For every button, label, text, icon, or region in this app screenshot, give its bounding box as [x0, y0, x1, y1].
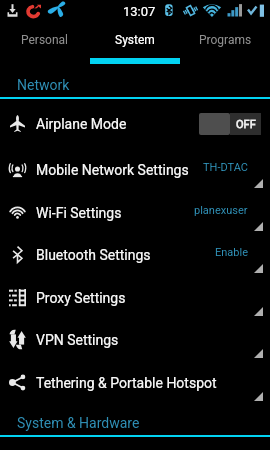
button[interactable]: Bluetooth Settings — [0, 233, 270, 276]
staticText: OFF — [236, 118, 256, 131]
staticText: VPN Settings — [36, 332, 119, 348]
staticText: Network — [17, 77, 70, 93]
staticText: Airplane Mode — [36, 116, 127, 132]
staticText: TH-DTAC — [203, 161, 248, 174]
staticText: Programs — [199, 33, 252, 47]
button[interactable]: VPN Settings — [0, 318, 270, 361]
staticText: Tethering & Portable Hotspot — [36, 375, 217, 391]
button[interactable]: Mobile Network Settings — [0, 148, 270, 191]
staticText: Proxy Settings — [36, 290, 126, 306]
staticText: planexuser — [194, 204, 248, 217]
staticText: Personal — [21, 33, 69, 47]
button[interactable]: Airplane Mode switch, off — [199, 113, 261, 135]
staticText: System — [115, 33, 155, 47]
staticText: System & Hardware — [17, 415, 140, 431]
button[interactable]: Personal — [0, 22, 90, 58]
staticText: Mobile Network Settings — [36, 162, 189, 178]
button[interactable]: Wi-Fi Settings — [0, 191, 270, 234]
staticText: Bluetooth Settings — [36, 247, 151, 263]
staticText: 13:07 — [123, 4, 156, 19]
button[interactable]: Tethering & Portable Hotspot — [0, 361, 270, 404]
staticText: Wi-Fi Settings — [36, 205, 122, 221]
staticText: Enable — [215, 246, 248, 259]
button[interactable]: Proxy Settings — [0, 276, 270, 319]
button[interactable]: Programs — [180, 22, 270, 58]
button[interactable]: Airplane Mode — [0, 99, 270, 148]
button[interactable]: System — [90, 22, 180, 58]
